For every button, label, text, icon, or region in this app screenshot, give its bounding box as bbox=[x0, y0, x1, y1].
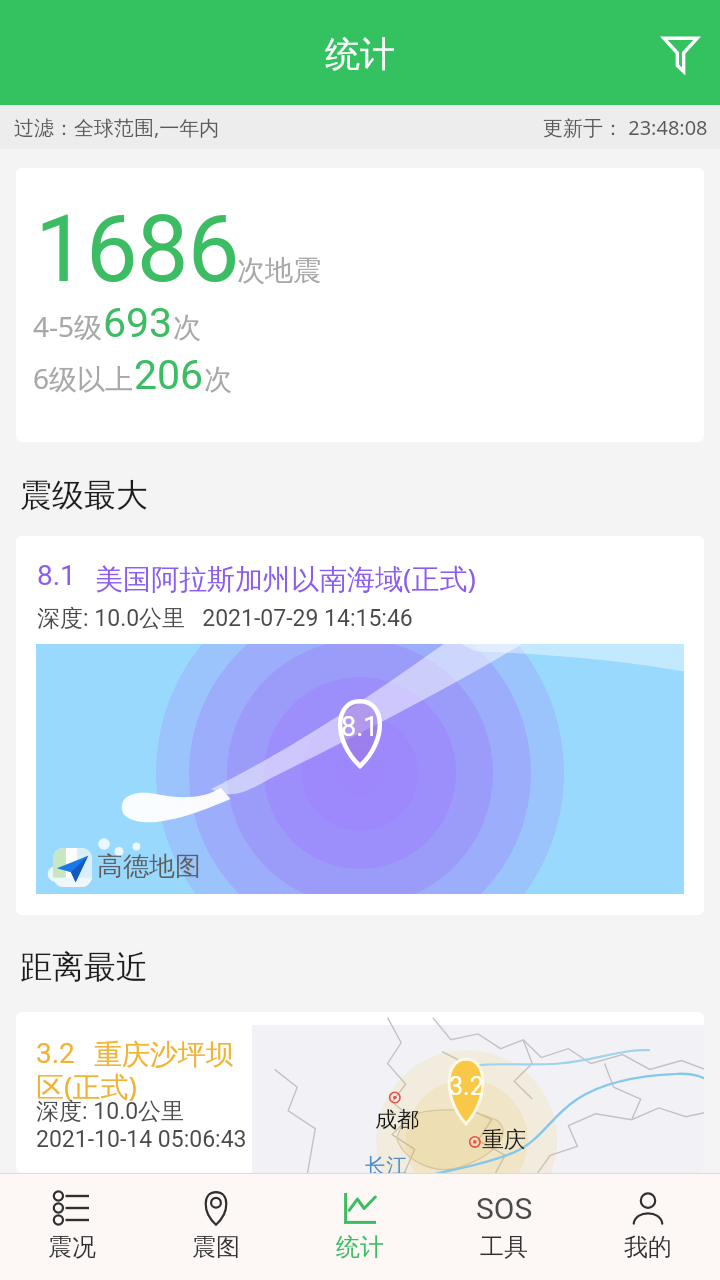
staticText: 4-5级 bbox=[33, 307, 103, 345]
staticText: 1686 bbox=[35, 196, 239, 304]
staticText: 更新于： 23:48:08 bbox=[543, 114, 708, 141]
staticText: 工具 bbox=[480, 1232, 528, 1262]
staticText: 震况 bbox=[48, 1232, 96, 1262]
staticText: 重庆沙坪坝 bbox=[94, 1037, 234, 1072]
staticText: 重庆 bbox=[482, 1126, 526, 1154]
staticText: 8.1 bbox=[37, 559, 76, 592]
staticText: 统计 bbox=[336, 1232, 384, 1262]
staticText: 6级以上 bbox=[33, 359, 134, 397]
staticText: 震级最大 bbox=[20, 475, 148, 515]
staticText: 成都 bbox=[375, 1106, 419, 1134]
staticText: 3.2 bbox=[36, 1037, 75, 1070]
staticText: SOS bbox=[476, 1191, 533, 1225]
button[interactable]: 震况 bbox=[0, 1173, 144, 1280]
staticText: 统计 bbox=[325, 32, 395, 76]
staticText: 长江 bbox=[365, 1153, 407, 1173]
staticText: 我的 bbox=[624, 1232, 672, 1262]
staticText: 206 bbox=[134, 351, 204, 399]
button[interactable]: 我的 bbox=[576, 1173, 720, 1280]
staticText: 区(正式) bbox=[36, 1067, 137, 1105]
staticText: 次地震 bbox=[237, 253, 321, 288]
button[interactable]: SOS bbox=[432, 1173, 576, 1280]
button[interactable]: 震图 bbox=[144, 1173, 288, 1280]
staticText: 次 bbox=[173, 310, 201, 345]
button[interactable]: Filter bbox=[647, 21, 711, 85]
staticText: 2021-10-14 05:06:43 bbox=[36, 1126, 247, 1153]
staticText: 深度: 10.0公里 bbox=[36, 1097, 185, 1126]
button[interactable]: 1686 bbox=[16, 168, 704, 442]
button[interactable]: 3.2 bbox=[16, 1012, 704, 1173]
staticText: 高德地图 bbox=[97, 850, 201, 883]
staticText: 次 bbox=[204, 362, 232, 397]
staticText: 8.1 bbox=[341, 711, 379, 743]
staticText: 震图 bbox=[192, 1232, 240, 1262]
staticText: 过滤：全球范围,一年内 bbox=[14, 114, 220, 141]
staticText: 3.2 bbox=[449, 1072, 484, 1101]
staticText: 693 bbox=[103, 299, 173, 347]
staticText: 美国阿拉斯加州以南海域(正式) bbox=[95, 559, 476, 597]
button[interactable]: 统计 bbox=[288, 1173, 432, 1280]
staticText: 距离最近 bbox=[20, 947, 148, 987]
button[interactable]: 8.1 bbox=[16, 536, 704, 915]
staticText: 深度: 10.0公里 2021-07-29 14:15:46 bbox=[37, 604, 413, 633]
